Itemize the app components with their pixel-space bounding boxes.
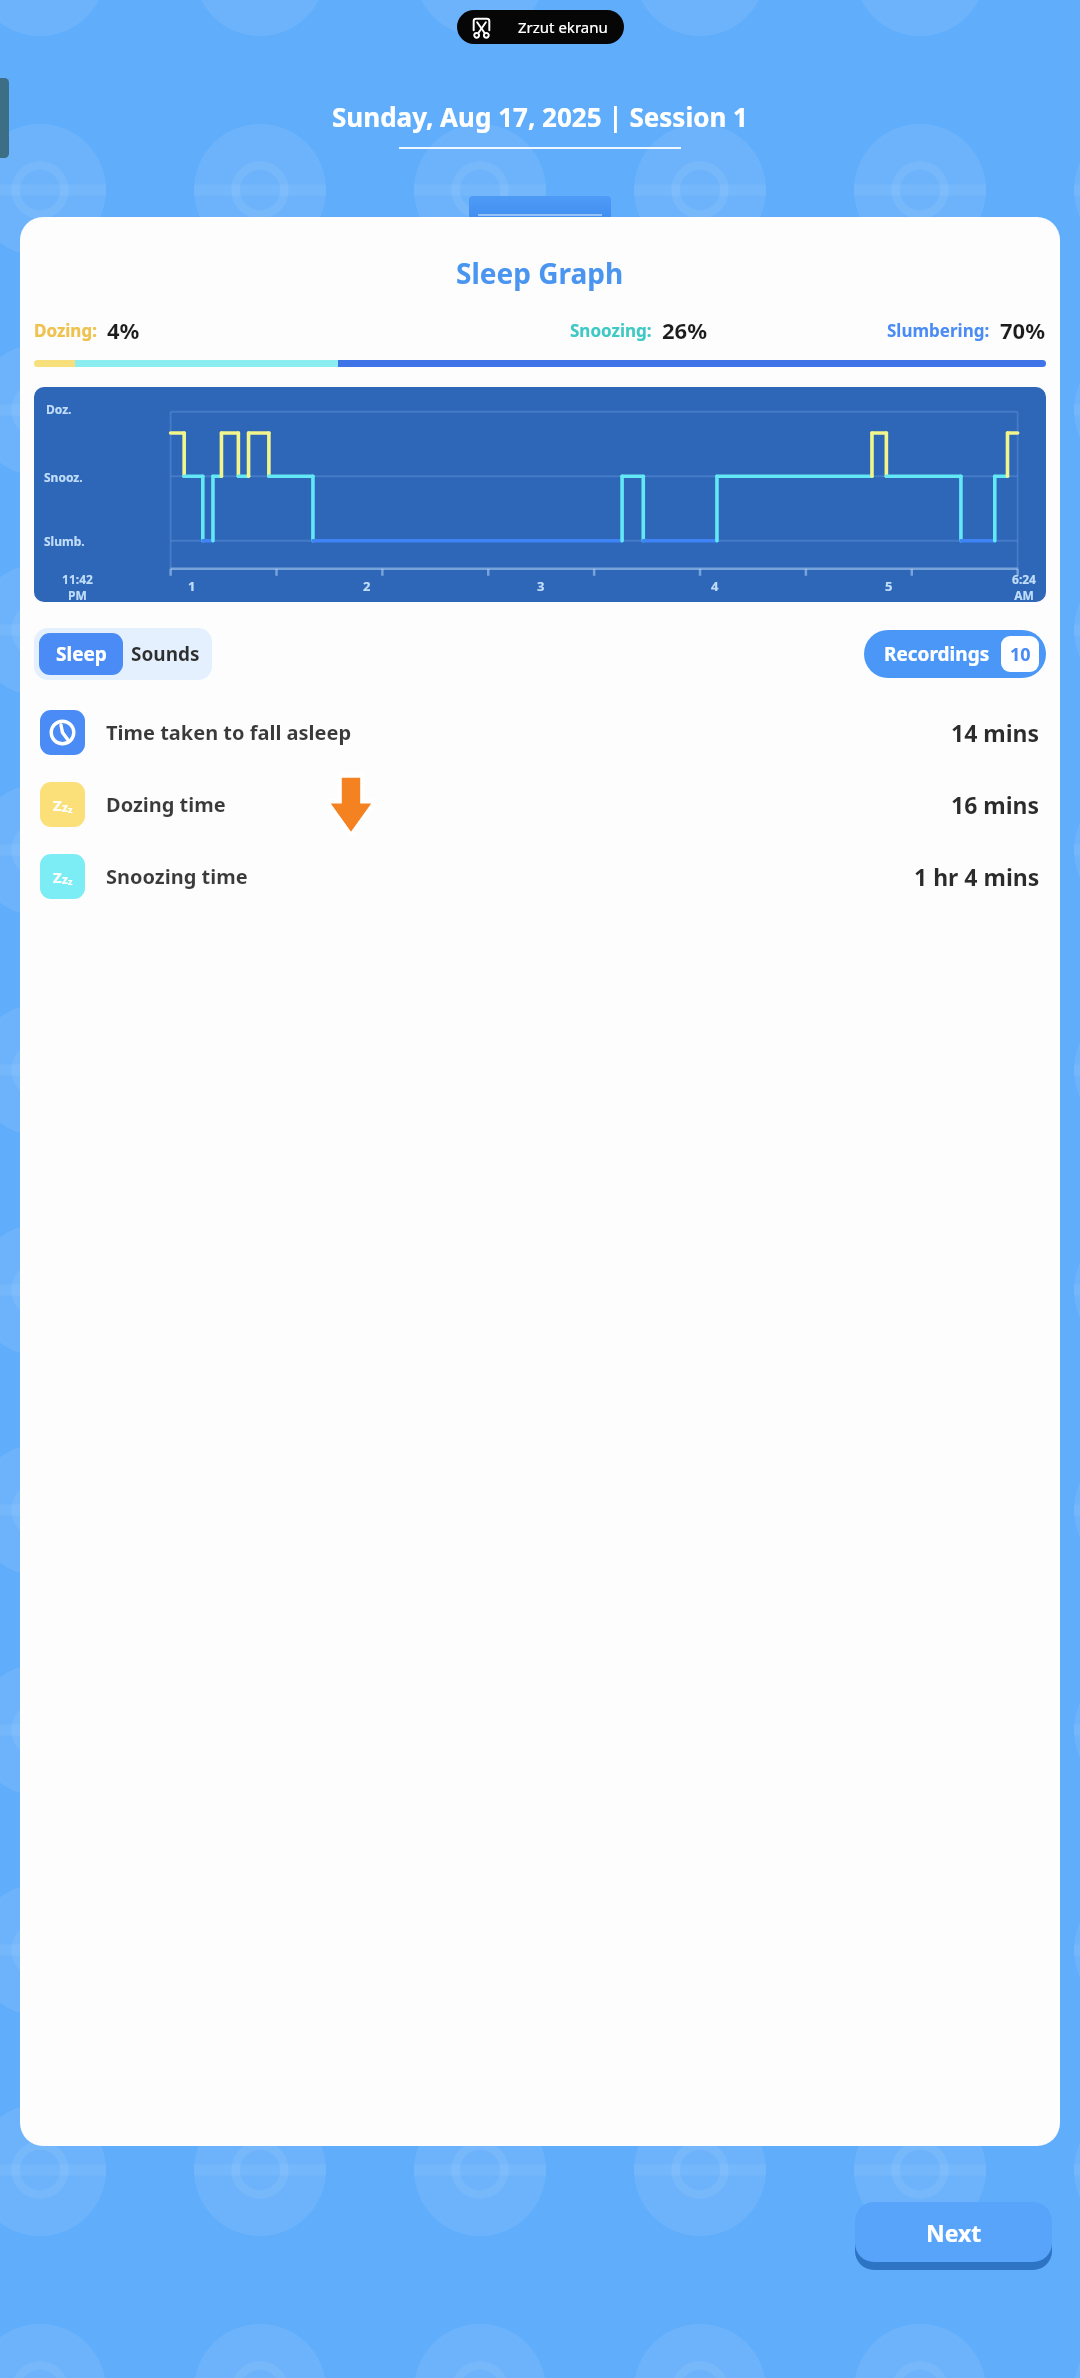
staticText: 4 [711,577,719,595]
staticText: Time taken to fall asleep [106,719,352,746]
staticText: Slumbering: [887,319,990,342]
staticText: Z [53,867,62,887]
staticText: Dozing: [34,319,97,342]
other: Scroll down [328,772,374,835]
staticText: 2 [363,577,371,595]
staticText: z [68,803,73,815]
staticText: z [68,875,73,887]
staticText: 1 hr 4 mins [914,861,1040,892]
staticText: 26% [662,315,708,345]
staticText: Next [926,2217,982,2248]
button[interactable]: Next [855,2202,1052,2262]
staticText: 16 mins [951,789,1040,820]
button[interactable]: Sounds [123,633,207,675]
button[interactable]: Screenshot [457,10,624,44]
other: Screenshot [470,16,493,39]
staticText: Snooz. [44,469,83,485]
staticText: Doz. [46,401,72,417]
staticText: 1 [188,577,196,595]
staticText: z [62,871,68,887]
staticText: Z [53,795,62,815]
staticText: Recordings [884,641,990,667]
staticText: 4% [107,315,140,345]
staticText: Snoozing time [106,863,248,890]
button[interactable]: Recordings [864,630,1046,678]
staticText: Slumb. [44,533,85,549]
button[interactable]: Sleep [39,633,123,675]
staticText: 14 mins [951,717,1040,748]
staticText: Snoozing: [570,319,652,342]
staticText: Sunday, Aug 17, 2025 | Session 1 [332,99,748,134]
button[interactable]: Time taken to fall asleep [20,702,1060,762]
staticText: Sleep [56,641,107,667]
staticText: 10 [1010,642,1031,667]
button[interactable]: Z [20,846,1060,906]
staticText: 6:24 AM [1012,571,1036,602]
staticText: 3 [537,577,545,595]
staticText: Sleep Graph [456,254,624,292]
staticText: 5 [885,577,893,595]
staticText: 70% [1000,315,1046,345]
staticText: Sounds [131,641,200,667]
staticText: z [62,799,68,815]
button[interactable]: Z [20,774,1060,834]
staticText: Dozing time [106,791,226,818]
staticText: Zrzut ekranu [518,17,608,37]
staticText: 11:42 PM [62,571,93,602]
